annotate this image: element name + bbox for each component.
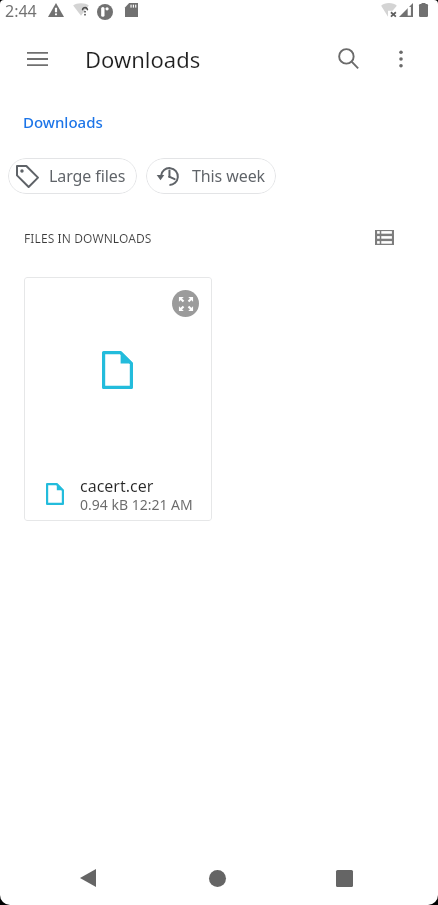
- button[interactable]: Expand preview: [24, 277, 212, 521]
- staticText: This week: [192, 165, 266, 187]
- staticText: Downloads: [23, 112, 103, 132]
- staticText: Large files: [49, 165, 126, 187]
- button[interactable]: Recent apps: [320, 854, 368, 902]
- staticText: Downloads: [85, 44, 201, 74]
- staticText: 0.94 kB 12:21 AM: [80, 495, 193, 514]
- button[interactable]: Expand preview: [172, 290, 199, 317]
- staticText: FILES IN DOWNLOADS: [24, 230, 152, 246]
- button[interactable]: Large files: [8, 158, 137, 194]
- button[interactable]: Open navigation drawer: [13, 35, 61, 83]
- button[interactable]: This week: [146, 158, 276, 194]
- staticText: 2:44: [5, 0, 37, 22]
- button[interactable]: Home: [193, 854, 241, 902]
- button[interactable]: Back: [64, 854, 112, 902]
- button[interactable]: Downloads: [23, 112, 103, 132]
- button[interactable]: Switch to list view: [364, 217, 404, 257]
- staticText: cacert.cer: [80, 475, 154, 497]
- button[interactable]: More options: [377, 35, 425, 83]
- button[interactable]: Search: [324, 34, 372, 82]
